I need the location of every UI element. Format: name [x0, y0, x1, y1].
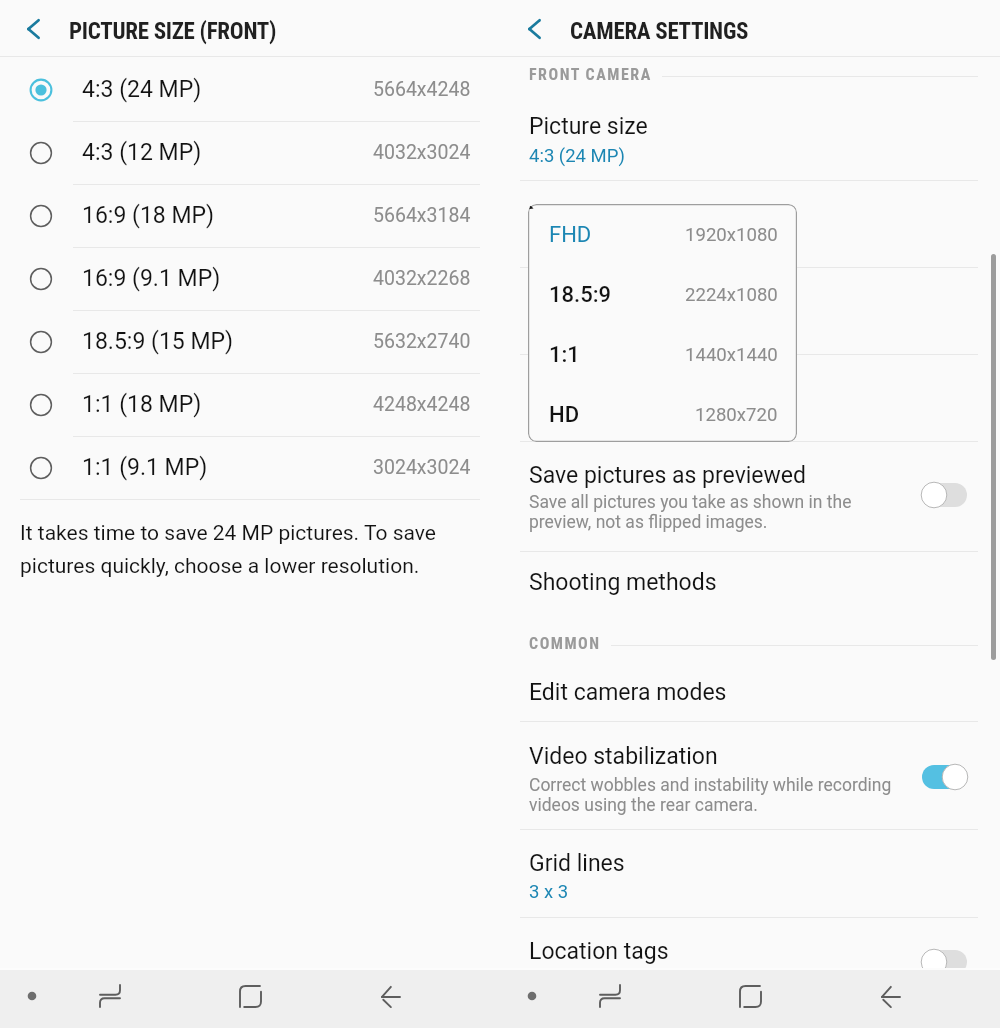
button[interactable]: 1:1 (18 MP)	[0, 373, 500, 436]
button[interactable]: HDR (rich tone)	[500, 355, 1000, 441]
button[interactable]: Video size	[500, 181, 1000, 267]
button[interactable]: Back	[363, 967, 417, 1025]
staticText: 5664x3184	[373, 204, 471, 227]
button[interactable]: Shooting methods	[500, 552, 1000, 612]
staticText: 4032x2268	[373, 267, 471, 290]
button[interactable]: Edit camera modes	[500, 668, 1000, 721]
button[interactable]: Notification dot	[505, 967, 559, 1025]
button[interactable]: Timer	[500, 268, 1000, 354]
staticText: 5632x2740	[373, 330, 471, 353]
button[interactable]: Save pictures as previewed	[500, 442, 1000, 551]
staticText: CAMERA SETTINGS	[570, 18, 749, 45]
button[interactable]: 4:3 (12 MP)	[0, 121, 500, 184]
staticText: Save pictures as previewed	[529, 462, 807, 489]
staticText: 1:1 (9.1 MP)	[82, 454, 208, 481]
staticText: 1440x1440	[685, 344, 778, 366]
button[interactable]: 16:9 (18 MP)	[0, 184, 500, 247]
staticText: FRONT CAMERA	[529, 65, 652, 84]
staticText: 1920x1080	[685, 224, 778, 246]
staticText: Picture size	[529, 113, 648, 140]
button[interactable]: Back	[863, 967, 917, 1025]
staticText: 4248x4248	[373, 393, 471, 416]
staticText: Edit camera modes	[529, 679, 727, 706]
button[interactable]: Home	[223, 967, 277, 1025]
button[interactable]: Grid lines	[500, 830, 1000, 917]
button[interactable]: HD	[528, 388, 797, 442]
staticText: Correct wobbles and instability while re…	[529, 775, 892, 815]
staticText: HD	[549, 402, 580, 428]
staticText: 16:9 (9.1 MP)	[82, 265, 221, 292]
button[interactable]: Turn on	[919, 479, 971, 511]
button[interactable]: Home	[723, 967, 777, 1025]
staticText: Location tags	[529, 938, 669, 965]
staticText: Timer	[529, 298, 589, 325]
staticText: 5664x4248	[373, 78, 471, 101]
staticText: Grid lines	[529, 850, 625, 877]
staticText: It takes time to save 24 MP pictures. To…	[20, 521, 436, 578]
staticText: Video stabilization	[529, 743, 718, 770]
staticText: Video size	[529, 211, 635, 238]
staticText: 4:3 (12 MP)	[82, 139, 202, 166]
button[interactable]: Picture size	[500, 98, 1000, 180]
staticText: 18.5:9 (15 MP)	[82, 328, 234, 355]
button[interactable]: Recent apps	[583, 967, 637, 1025]
button[interactable]: Video stabilization	[500, 722, 1000, 829]
staticText: 16:9 (18 MP)	[82, 202, 215, 229]
button[interactable]: 1:1 (9.1 MP)	[0, 436, 500, 499]
button[interactable]: Navigate up	[511, 6, 557, 52]
staticText: 3 x 3	[529, 881, 569, 903]
staticText: 1:1	[549, 342, 580, 368]
staticText: 18.5:9	[549, 282, 611, 308]
staticText: 3024x3024	[373, 456, 471, 479]
button[interactable]: Recent apps	[83, 967, 137, 1025]
button[interactable]: FHD	[528, 208, 797, 262]
staticText: 4:3 (24 MP)	[82, 76, 202, 103]
staticText: 1280x720	[695, 404, 778, 426]
button[interactable]: 4:3 (24 MP)	[0, 58, 500, 121]
staticText: 4:3 (24 MP)	[529, 145, 625, 167]
staticText: PICTURE SIZE (FRONT)	[69, 18, 277, 45]
button[interactable]: 18.5:9 (15 MP)	[0, 310, 500, 373]
staticText: 4032x3024	[373, 141, 471, 164]
button[interactable]: 1:1	[528, 328, 797, 382]
button[interactable]: 18.5:9	[528, 268, 797, 322]
staticText: Save all pictures you take as shown in t…	[529, 492, 852, 532]
button[interactable]: Location tags	[500, 918, 1000, 970]
button[interactable]: Turn on	[919, 946, 971, 978]
staticText: Shooting methods	[529, 569, 717, 596]
button[interactable]: 16:9 (9.1 MP)	[0, 247, 500, 310]
button[interactable]: Navigate up	[10, 6, 56, 52]
staticText: 1:1 (18 MP)	[82, 391, 202, 418]
staticText: FHD	[549, 222, 592, 248]
staticText: HDR (rich tone)	[529, 385, 686, 412]
staticText: COMMON	[529, 634, 601, 653]
button[interactable]: Notification dot	[5, 967, 59, 1025]
staticText: 2224x1080	[685, 284, 778, 306]
button[interactable]: Turn off	[919, 761, 971, 793]
